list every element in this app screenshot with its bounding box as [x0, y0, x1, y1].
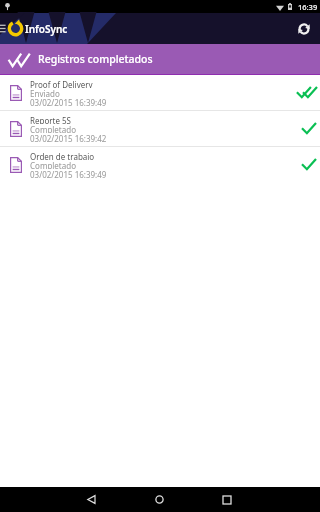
button[interactable]: Registros completados [0, 44, 320, 74]
button[interactable]: Home [125, 487, 193, 512]
staticText: Completado [30, 160, 77, 169]
staticText: Registros completados [38, 52, 153, 66]
button[interactable]: Recent apps [193, 487, 261, 512]
staticText: Reporte 5S [30, 115, 71, 124]
button[interactable]: Orden de trabajo [0, 147, 320, 182]
staticText: 03/02/2015 16:39:49 [30, 97, 107, 108]
staticText: 16:39 [298, 2, 318, 12]
button[interactable]: Reporte 5S [0, 111, 320, 146]
staticText: Proof of Delivery [30, 79, 93, 88]
button[interactable]: Back [57, 487, 125, 512]
staticText: 03/02/2015 16:39:49 [30, 169, 107, 180]
button[interactable]: Proof of Delivery [0, 75, 320, 110]
staticText: 03/02/2015 16:39:42 [30, 133, 107, 144]
staticText: Completado [30, 124, 77, 133]
staticText: Orden de trabajo [30, 151, 95, 160]
button[interactable]: Navigation drawer [0, 13, 14, 44]
staticText: Enviado [30, 88, 60, 97]
button[interactable]: Sync [287, 13, 320, 44]
staticText: InfoSync [25, 22, 68, 36]
